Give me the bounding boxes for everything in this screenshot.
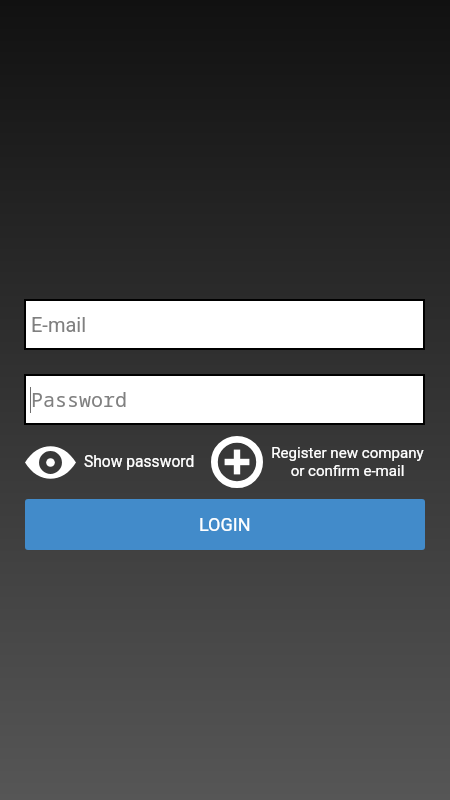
button[interactable]: Password <box>26 376 423 423</box>
staticText: E-mail <box>31 313 87 336</box>
other: Register new company or confirm e-mail <box>211 436 263 488</box>
staticText: LOGIN <box>199 514 251 535</box>
button[interactable]: Show password <box>25 436 195 488</box>
button[interactable]: LOGIN <box>25 499 425 550</box>
staticText: Register new company or confirm e-mail <box>271 444 424 480</box>
staticText: Show password <box>84 453 195 471</box>
other: Show password <box>25 447 76 478</box>
staticText: Password <box>31 386 127 413</box>
button[interactable]: Register new company or confirm e-mail <box>211 436 424 488</box>
button[interactable]: E-mail <box>26 301 423 348</box>
